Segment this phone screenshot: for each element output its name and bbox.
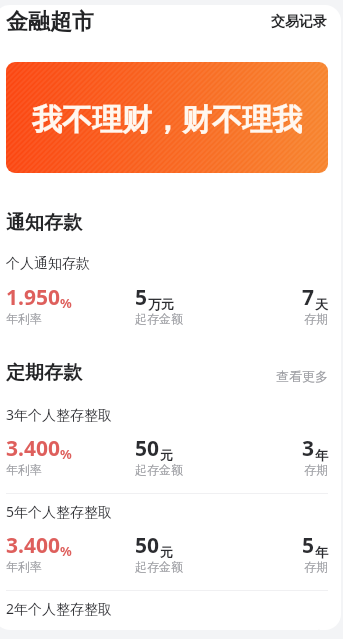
staticText: 起存金额 <box>135 559 183 574</box>
staticText: 我不理财，财不理我 <box>32 101 302 139</box>
staticText: 5 <box>135 283 148 312</box>
staticText: 起存金额 <box>135 311 183 326</box>
staticText: 年 <box>315 544 328 560</box>
staticText: % <box>60 628 72 639</box>
button[interactable]: 个人通知存款 <box>6 255 328 327</box>
staticText: 年 <box>315 628 328 639</box>
staticText: 3年个人整存整取 <box>6 405 113 424</box>
staticText: % <box>60 294 72 312</box>
staticText: % <box>60 445 72 463</box>
staticText: 2年个人整存整取 <box>6 599 113 618</box>
staticText: 2 <box>302 628 315 639</box>
button[interactable]: 交易记录 <box>270 9 328 35</box>
staticText: 查看更多 <box>276 368 328 384</box>
staticText: 天 <box>315 296 328 312</box>
staticText: 元 <box>160 628 173 639</box>
button[interactable]: 我不理财，财不理我 <box>6 62 328 173</box>
staticText: 50 <box>135 531 160 560</box>
staticText: 元 <box>160 447 173 463</box>
staticText: 3.400 <box>6 434 60 463</box>
staticText: 元 <box>160 544 173 560</box>
staticText: 年 <box>315 447 328 463</box>
staticText: 通知存款 <box>6 211 82 235</box>
staticText: 2.850 <box>6 628 60 639</box>
staticText: 5 <box>302 531 315 560</box>
staticText: 存期 <box>304 462 328 477</box>
staticText: 存期 <box>304 311 328 326</box>
staticText: 年利率 <box>6 559 42 574</box>
staticText: 5年个人整存整取 <box>6 502 113 521</box>
staticText: 定期存款 <box>6 361 82 385</box>
button[interactable]: 2年个人整存整取 <box>6 575 328 639</box>
staticText: 起存金额 <box>135 462 183 477</box>
staticText: % <box>60 542 72 560</box>
staticText: 交易记录 <box>271 13 327 31</box>
staticText: 金融超市 <box>6 8 94 36</box>
staticText: 存期 <box>304 559 328 574</box>
staticText: 个人通知存款 <box>6 255 90 273</box>
staticText: 1.950 <box>6 283 60 312</box>
staticText: 3 <box>302 434 315 463</box>
staticText: 50 <box>135 628 160 639</box>
button[interactable]: 5年个人整存整取 <box>6 478 328 575</box>
staticText: 万元 <box>148 296 174 312</box>
staticText: 年利率 <box>6 462 42 477</box>
staticText: 50 <box>135 434 160 463</box>
button[interactable]: 3年个人整存整取 <box>6 405 328 478</box>
button[interactable]: 查看更多 <box>276 368 328 385</box>
staticText: 3.400 <box>6 531 60 560</box>
staticText: 7 <box>302 283 315 312</box>
staticText: 年利率 <box>6 311 42 326</box>
